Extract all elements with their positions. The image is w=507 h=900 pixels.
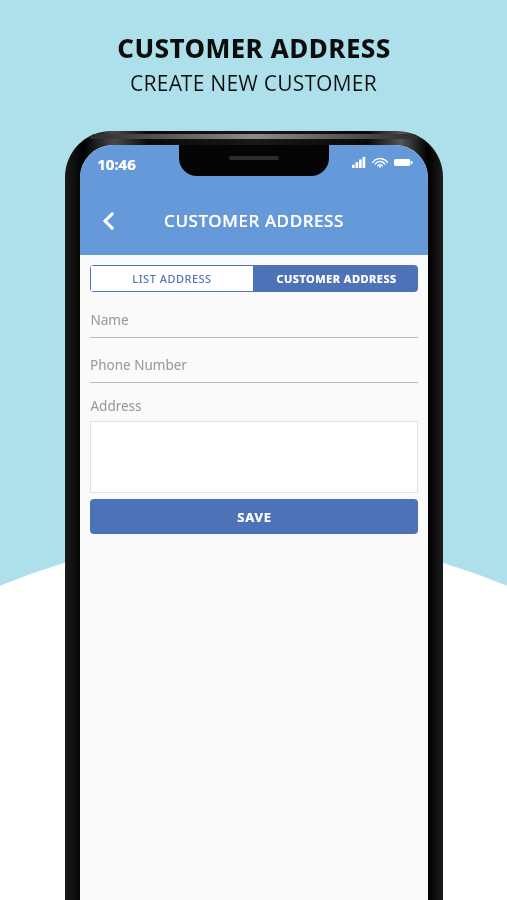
staticText: CUSTOMER ADDRESS [164,209,344,232]
button[interactable]: SAVE [90,499,418,534]
button[interactable]: Name [90,311,418,338]
staticText: Address [90,397,142,415]
button[interactable]: Phone Number [90,356,418,383]
staticText: 10:46 [97,154,136,174]
staticText: LIST ADDRESS [132,271,212,286]
staticText: SAVE [237,508,272,526]
button[interactable]: CUSTOMER ADDRESS [254,265,418,292]
staticText: Name [90,311,129,329]
button[interactable] [90,421,418,493]
button[interactable]: Back [86,198,132,244]
button[interactable]: LIST ADDRESS [90,265,254,292]
staticText: CUSTOMER ADDRESS [276,271,397,286]
staticText: CUSTOMER ADDRESS [117,30,391,65]
staticText: CREATE NEW CUSTOMER [130,69,377,98]
staticText: Phone Number [90,356,187,374]
